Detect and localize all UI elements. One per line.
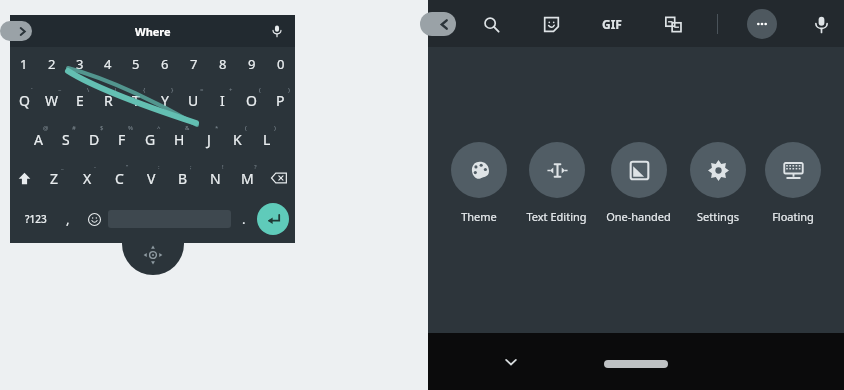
button[interactable]: Back — [420, 12, 456, 36]
button[interactable]: , — [56, 197, 80, 241]
button[interactable]: Backspace — [263, 159, 295, 197]
button[interactable]: 0 — [266, 47, 295, 81]
staticText: O — [246, 91, 257, 110]
staticText: : — [158, 163, 160, 171]
button[interactable]: J — [194, 119, 223, 159]
staticText: _ — [61, 163, 64, 171]
button[interactable]: Z — [38, 159, 71, 197]
button[interactable]: Text Editing — [524, 142, 589, 224]
staticText: + — [229, 86, 233, 94]
staticText: W — [45, 91, 59, 110]
button[interactable]: Expand toolbar — [0, 21, 32, 41]
button[interactable]: G — [136, 119, 165, 159]
button[interactable]: Emoji — [80, 197, 108, 241]
staticText: 3 — [76, 55, 84, 73]
button[interactable]: 2 — [38, 47, 66, 81]
button[interactable]: C — [103, 159, 135, 197]
button[interactable]: Stickers — [536, 9, 566, 39]
button[interactable]: . — [231, 197, 257, 241]
staticText: P — [276, 91, 285, 110]
button[interactable]: Theme — [449, 142, 509, 224]
button[interactable]: Q — [10, 81, 38, 119]
button[interactable]: D — [80, 119, 108, 159]
button[interactable]: 8 — [208, 47, 237, 81]
button[interactable]: Translate — [658, 9, 688, 39]
button[interactable]: O — [237, 81, 266, 119]
staticText: ( — [259, 86, 261, 94]
button[interactable]: 4 — [94, 47, 122, 81]
button[interactable]: S — [52, 119, 80, 159]
button[interactable]: P — [266, 81, 295, 119]
staticText: 4 — [104, 55, 112, 73]
button[interactable]: F — [108, 119, 136, 159]
staticText: 5 — [132, 55, 140, 73]
staticText: T — [132, 91, 140, 110]
button[interactable]: U — [179, 81, 208, 119]
button[interactable]: Y — [150, 81, 179, 119]
staticText: { — [143, 86, 146, 94]
staticText: $ — [100, 124, 104, 132]
button[interactable]: B — [167, 159, 199, 197]
button[interactable]: 7 — [179, 47, 208, 81]
button[interactable]: GIF — [595, 7, 629, 41]
button[interactable]: Settings — [688, 142, 748, 224]
button[interactable]: N — [199, 159, 231, 197]
staticText: - — [94, 163, 96, 171]
staticText: F — [118, 130, 126, 149]
staticText: ? — [254, 163, 257, 171]
button[interactable]: L — [252, 119, 281, 159]
button[interactable]: More options — [747, 9, 777, 39]
staticText: B — [178, 169, 188, 188]
staticText: % — [128, 124, 133, 132]
staticText: 2 — [48, 55, 56, 73]
staticText: 7 — [190, 55, 198, 73]
button[interactable]: X — [71, 159, 103, 197]
staticText: R — [104, 91, 113, 110]
button[interactable]: K — [223, 119, 252, 159]
button[interactable]: One-handed — [604, 142, 673, 224]
button[interactable]: 9 — [237, 47, 266, 81]
button[interactable]: H — [165, 119, 194, 159]
button[interactable]: Move keyboard — [122, 243, 184, 275]
staticText: * — [215, 124, 219, 132]
button[interactable]: W — [38, 81, 66, 119]
button[interactable]: I — [208, 81, 237, 119]
staticText: ~ — [58, 86, 62, 94]
staticText: GIF — [602, 16, 622, 32]
button[interactable]: 1 — [10, 47, 38, 81]
staticText: S — [62, 130, 70, 149]
staticText: 0 — [277, 55, 285, 73]
button[interactable]: Hide keyboard — [496, 347, 526, 377]
button[interactable]: Voice input — [806, 9, 836, 39]
button[interactable]: A — [24, 119, 52, 159]
button[interactable]: 6 — [150, 47, 179, 81]
button[interactable]: V — [135, 159, 167, 197]
staticText: 9 — [248, 55, 256, 73]
staticText: # — [72, 124, 76, 132]
button[interactable]: Voice input — [267, 21, 287, 41]
button[interactable]: M — [231, 159, 263, 197]
button[interactable]: Home — [604, 360, 668, 368]
staticText: H — [174, 130, 185, 149]
staticText: Floating — [772, 209, 814, 224]
staticText: | — [114, 86, 118, 94]
button[interactable]: 3 — [66, 47, 94, 81]
button[interactable]: E — [66, 81, 94, 119]
staticText: N — [210, 169, 221, 188]
staticText: " — [126, 163, 129, 171]
button[interactable]: Search — [476, 9, 506, 39]
button[interactable]: ?123 — [16, 197, 56, 241]
button[interactable]: Enter — [257, 203, 289, 235]
button[interactable]: 5 — [122, 47, 150, 81]
staticText: ) — [288, 86, 290, 94]
staticText: 8 — [219, 55, 227, 73]
button[interactable]: R — [94, 81, 122, 119]
button[interactable]: Floating — [763, 142, 823, 224]
staticText: ^ — [157, 124, 161, 132]
staticText: ) — [274, 124, 276, 132]
staticText: \ — [87, 86, 90, 94]
button[interactable]: Shift — [10, 159, 38, 197]
button[interactable]: T — [122, 81, 150, 119]
staticText: Text Editing — [526, 209, 587, 224]
